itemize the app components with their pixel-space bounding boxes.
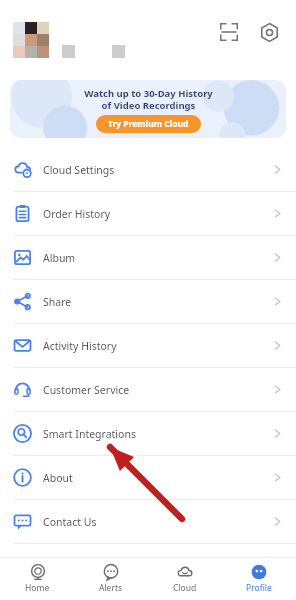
button[interactable]: Watch up to 30-Day History of Video Reco… [10,80,286,138]
staticText: Customer Service [43,383,130,397]
button[interactable]: Cloud [148,558,222,600]
button[interactable]: Album [0,236,296,280]
button[interactable]: Scan [212,15,246,49]
staticText: Share [43,295,72,309]
button[interactable]: Home [0,558,74,600]
staticText: Order History [43,207,111,221]
button[interactable]: Share [0,280,296,324]
button[interactable]: Contact Us [0,500,296,544]
staticText: Smart Integrations [43,427,136,441]
button[interactable]: Order History [0,192,296,236]
button[interactable]: Customer Service [0,368,296,412]
staticText: Cloud [173,582,197,594]
staticText: Profile [246,582,272,594]
staticText: Activity History [43,339,117,353]
button[interactable]: Alerts [74,558,148,600]
button[interactable]: Settings [252,15,286,49]
staticText: Watch up to 30-Day History of Video Reco… [84,87,213,112]
button[interactable]: Try Premium Cloud [96,115,201,133]
button[interactable]: Activity History [0,324,296,368]
button[interactable]: About [0,456,296,500]
staticText: Alerts [99,582,123,594]
staticText: Cloud Settings [43,163,115,177]
staticText: Try Premium Cloud [108,118,189,130]
staticText: Album [43,251,76,265]
button[interactable]: Smart Integrations [0,412,296,456]
staticText: About [43,471,73,485]
staticText: Contact Us [43,515,97,529]
button[interactable]: Cloud Settings [0,148,296,192]
staticText: Home [25,582,50,594]
button[interactable]: Profile [222,558,296,600]
